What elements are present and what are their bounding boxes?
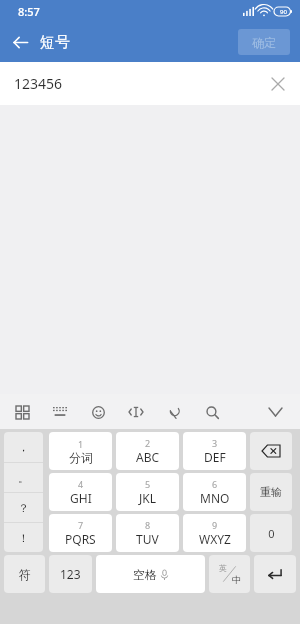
staticText: 6 (212, 478, 218, 490)
button[interactable]: 8 (116, 514, 179, 552)
staticText: 0 (268, 526, 275, 541)
staticText: ， (18, 440, 29, 454)
staticText: JKL (139, 490, 156, 506)
staticText: 空格 (133, 567, 157, 582)
button[interactable]: Cursor (124, 400, 148, 424)
button[interactable]: 1 (49, 432, 112, 470)
staticText: MNO (200, 490, 230, 506)
button[interactable]: 。 (4, 463, 43, 492)
button[interactable]: 123 (49, 555, 92, 593)
button[interactable]: 确定 (238, 29, 290, 55)
button[interactable]: Switch language (209, 555, 250, 593)
staticText: 符 (19, 567, 31, 582)
staticText: GHI (70, 490, 92, 506)
button[interactable]: Clear (264, 70, 292, 98)
button[interactable]: 2 (116, 432, 179, 470)
staticText: 123456 (14, 74, 63, 93)
staticText: 123 (60, 566, 81, 582)
button[interactable]: 7 (49, 514, 112, 552)
button[interactable]: Keyboard (48, 400, 72, 424)
staticText: ？ (18, 501, 29, 515)
button[interactable]: Hide keyboard (262, 399, 288, 425)
staticText: 。 (18, 471, 29, 485)
staticText: 3 (212, 437, 218, 449)
button[interactable]: 重输 (250, 473, 292, 511)
button[interactable]: 空格 (96, 555, 205, 593)
staticText: 英 (219, 563, 227, 573)
staticText: 9 (212, 519, 218, 531)
staticText: 4 (78, 478, 84, 490)
staticText: 90 (280, 8, 287, 16)
button[interactable]: Grid (10, 400, 34, 424)
staticText: 中 (232, 574, 241, 585)
button[interactable]: ！ (4, 523, 43, 552)
staticText: 7 (78, 519, 84, 531)
staticText: 重输 (260, 485, 282, 499)
staticText: PQRS (65, 531, 96, 547)
button[interactable]: 9 (183, 514, 246, 552)
button[interactable]: ？ (4, 493, 43, 522)
button[interactable]: Enter (254, 555, 296, 593)
button[interactable]: Emoji (86, 400, 110, 424)
staticText: 1 (78, 438, 84, 450)
staticText: WXYZ (199, 531, 231, 547)
staticText: 2 (145, 437, 151, 449)
staticText: 5 (145, 478, 151, 490)
button[interactable]: 4 (49, 473, 112, 511)
staticText: ABC (136, 449, 160, 465)
button[interactable]: 0 (250, 514, 292, 552)
button[interactable]: 6 (183, 473, 246, 511)
button[interactable]: ， (4, 432, 43, 462)
button[interactable]: Attach (162, 400, 186, 424)
staticText: ！ (18, 531, 29, 545)
staticText: 短号 (40, 33, 70, 52)
button[interactable]: 5 (116, 473, 179, 511)
staticText: 8 (145, 519, 151, 531)
staticText: 确定 (252, 35, 276, 50)
staticText: 分词 (69, 450, 93, 465)
button[interactable]: Back (0, 22, 40, 62)
staticText: DEF (204, 449, 226, 465)
button[interactable]: Delete (250, 432, 292, 470)
staticText: 8:57 (18, 4, 40, 19)
staticText: TUV (136, 531, 159, 547)
button[interactable]: 符 (4, 555, 45, 593)
button[interactable]: 3 (183, 432, 246, 470)
button[interactable]: Search (200, 400, 224, 424)
